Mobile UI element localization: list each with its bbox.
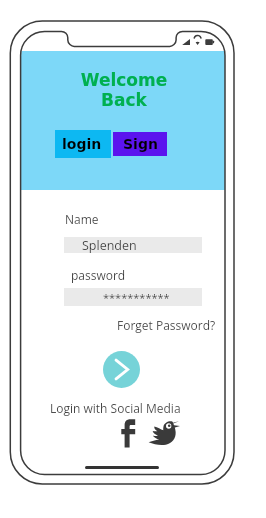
staticText: Name xyxy=(65,211,99,227)
button[interactable]: login xyxy=(55,130,111,158)
button[interactable]: Twitter xyxy=(147,419,181,448)
staticText: Splenden xyxy=(82,237,137,253)
button[interactable]: Forget Password? xyxy=(117,317,216,333)
staticText: Login with Social Media xyxy=(50,400,181,416)
staticText: Welcome Back xyxy=(22,70,225,110)
staticText: login xyxy=(62,136,102,152)
staticText: password xyxy=(71,267,126,283)
button[interactable]: Next xyxy=(103,351,140,388)
button[interactable]: *********** xyxy=(64,288,202,306)
staticText: *********** xyxy=(103,290,170,305)
button[interactable]: Sign xyxy=(113,132,167,156)
staticText: Sign xyxy=(123,136,158,152)
button[interactable]: Splenden xyxy=(64,237,202,253)
button[interactable]: Facebook xyxy=(121,419,136,449)
